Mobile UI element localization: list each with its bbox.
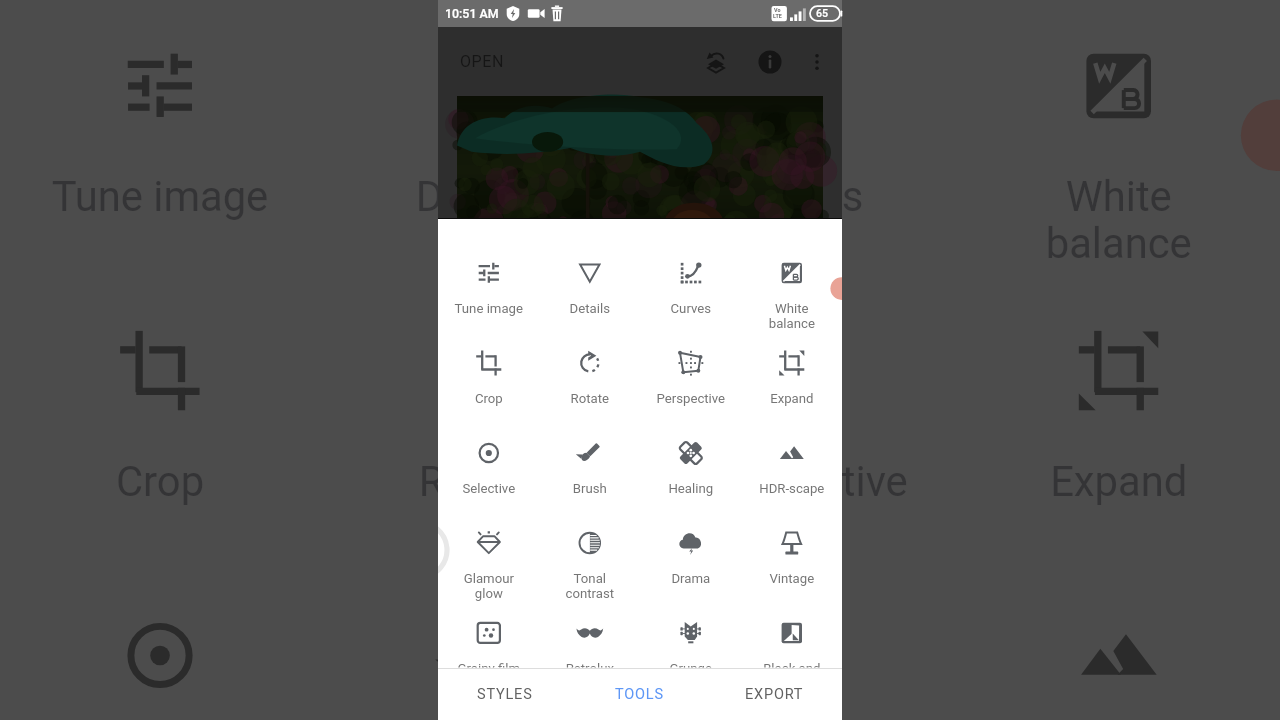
button[interactable]: White balance [741,245,842,335]
button[interactable]: OPEN [450,41,520,81]
button[interactable]: Crop [438,335,539,425]
button[interactable]: Expand [741,335,842,425]
button[interactable]: Selective [438,425,539,515]
button[interactable]: HDR-scape [741,425,842,515]
staticText: 65 [816,7,829,19]
button[interactable]: Vintage [741,515,842,605]
button[interactable]: Grainy film [438,605,539,667]
button[interactable]: Curves [640,245,741,335]
button[interactable]: Brush [539,425,640,515]
staticText: Vo [774,7,781,13]
button[interactable]: Rotate [539,335,640,425]
staticText: EXPORT [745,686,804,703]
staticText: LTE [773,13,782,19]
button[interactable]: Glamour glow [438,515,539,605]
button[interactable]: Retrolux [539,605,640,667]
button[interactable]: Info [749,41,791,83]
button[interactable]: Black and [741,605,842,667]
button[interactable]: STYLES [438,668,572,720]
button[interactable]: TOOLS [572,668,707,720]
button[interactable]: Healing [640,425,741,515]
button[interactable]: Tune image [438,245,539,335]
staticText: OPEN [460,52,505,71]
button[interactable]: Details [539,245,640,335]
button[interactable]: EXPORT [707,668,842,720]
staticText: STYLES [477,686,533,703]
staticText: 10:51 AM [445,6,499,21]
staticText: TOOLS [615,686,664,703]
button[interactable]: Grunge [640,605,741,667]
button[interactable]: Tonal contrast [539,515,640,605]
button[interactable]: Undo stack [695,41,737,83]
button[interactable]: Perspective [640,335,741,425]
button[interactable]: Drama [640,515,741,605]
